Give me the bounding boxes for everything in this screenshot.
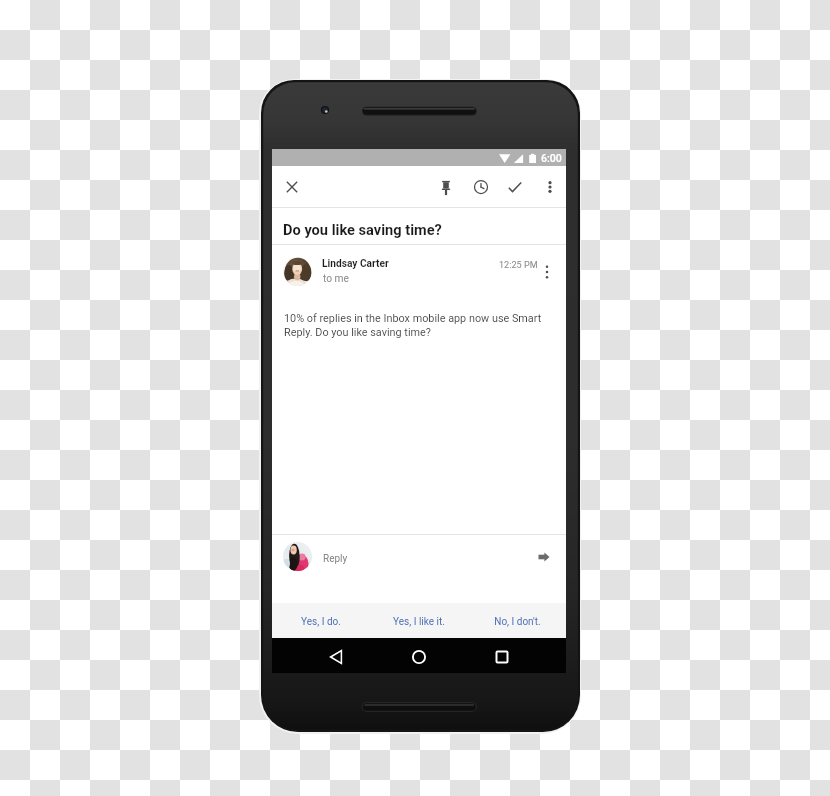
button[interactable]: Close [275, 170, 309, 204]
staticText: 6:00 [541, 152, 562, 164]
staticText: Yes, I do. [301, 616, 341, 628]
button[interactable]: Snooze [464, 170, 498, 204]
button[interactable]: Done [498, 170, 532, 204]
button[interactable]: No, I don't. [468, 603, 566, 638]
button[interactable]: Home [402, 640, 436, 674]
button[interactable]: Send [532, 545, 556, 569]
button[interactable]: Back [319, 640, 353, 674]
staticText: 10% of replies in the Inbox mobile app n… [284, 312, 546, 339]
staticText: Do you like saving time? [283, 221, 442, 238]
button[interactable]: Yes, I do. [272, 603, 370, 638]
staticText: to me [323, 273, 349, 285]
button[interactable]: Do you like saving time? [272, 208, 566, 244]
staticText: Yes, I like it. [393, 616, 445, 628]
button[interactable] [272, 245, 566, 291]
staticText: 12:25 PM [499, 260, 538, 271]
button[interactable]: Pin [429, 171, 463, 205]
button[interactable]: Message options [536, 261, 558, 283]
button[interactable]: Reply [272, 535, 566, 603]
staticText: No, I don't. [494, 616, 541, 628]
staticText: Reply [323, 553, 348, 565]
button[interactable]: Recents [485, 640, 519, 674]
button[interactable]: More options [533, 170, 567, 204]
staticText: Lindsay Carter [322, 258, 389, 270]
button[interactable]: Yes, I like it. [370, 603, 468, 638]
